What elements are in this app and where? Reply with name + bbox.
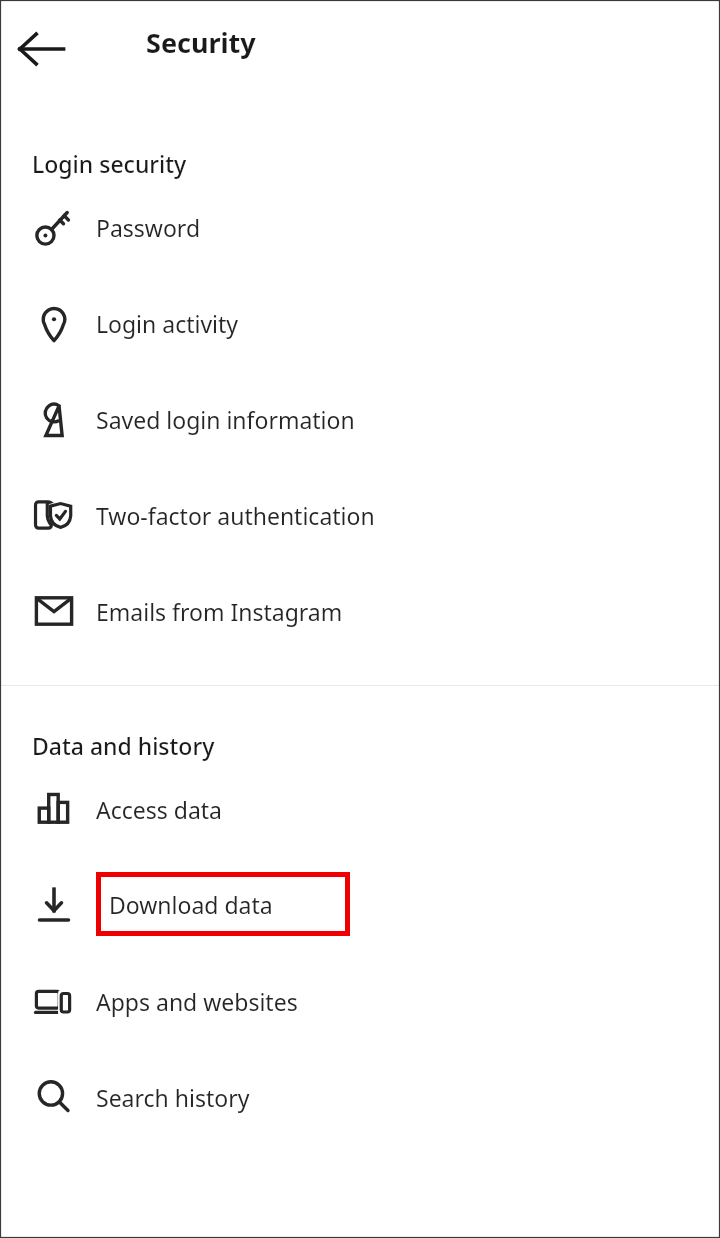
staticText: Two-factor authentication (96, 500, 375, 531)
staticText: Search history (96, 1082, 250, 1113)
staticText: Security (146, 24, 256, 61)
button[interactable]: Apps and websites (0, 953, 720, 1049)
button[interactable]: Back (14, 22, 68, 76)
staticText: Login security (32, 148, 187, 179)
button[interactable]: Emails from Instagram (0, 563, 720, 659)
staticText: Data and history (32, 730, 215, 761)
staticText: Password (96, 212, 201, 243)
staticText: Download data (109, 889, 273, 920)
staticText: Emails from Instagram (96, 596, 343, 627)
button[interactable]: Search history (0, 1049, 720, 1145)
staticText: Saved login information (96, 404, 355, 435)
staticText: Apps and websites (96, 986, 298, 1017)
button[interactable]: Login activity (0, 275, 720, 371)
button[interactable]: Access data (0, 761, 720, 857)
button[interactable]: Download data (0, 857, 720, 953)
staticText: Access data (96, 794, 223, 825)
button[interactable]: Saved login information (0, 371, 720, 467)
button[interactable]: Two-factor authentication (0, 467, 720, 563)
staticText: Login activity (96, 308, 239, 339)
button[interactable]: Password (0, 179, 720, 275)
